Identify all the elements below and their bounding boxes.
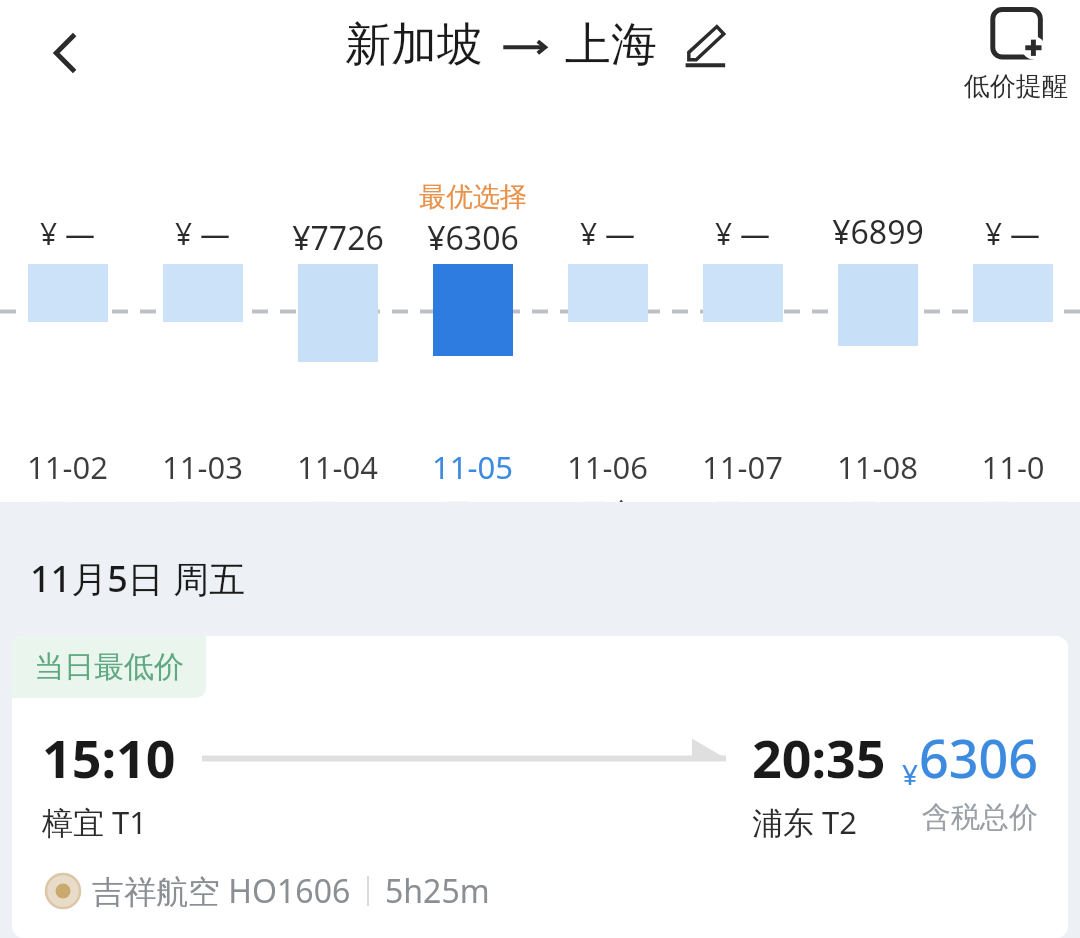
- button[interactable]: 最优选择: [405, 112, 540, 457]
- staticText: 周二: [37, 496, 99, 535]
- button[interactable]: 当日最低价: [12, 636, 1068, 938]
- staticText: ¥ —: [175, 213, 230, 254]
- staticText: 低价提醒: [964, 70, 1068, 103]
- staticText: 上海: [565, 16, 657, 74]
- staticText: 周二: [982, 496, 1044, 535]
- staticText: 周一: [847, 496, 909, 535]
- staticText: ¥ —: [715, 213, 770, 254]
- button[interactable]: ¥ —: [675, 112, 810, 457]
- staticText: 11-07: [702, 446, 783, 488]
- staticText: ¥6306: [427, 216, 519, 260]
- staticText: 11-04: [297, 446, 378, 488]
- button[interactable]: Back: [20, 8, 110, 98]
- button[interactable]: ¥ —: [135, 112, 270, 457]
- button[interactable]: ¥ —: [945, 112, 1080, 457]
- staticText: 11-08: [837, 446, 918, 488]
- staticText: 5h25m: [385, 869, 490, 913]
- staticText: 11月5日 周五: [30, 554, 246, 603]
- staticText: 11-03: [162, 446, 243, 488]
- staticText: ¥: [902, 755, 919, 793]
- staticText: 11-05: [432, 446, 513, 488]
- staticText: ¥ —: [580, 213, 635, 254]
- staticText: ¥7726: [292, 216, 384, 260]
- staticText: 含税总价: [922, 799, 1038, 836]
- staticText: ¥6899: [832, 210, 924, 254]
- staticText: 11-06: [567, 446, 648, 488]
- staticText: 樟宜 T1: [42, 801, 148, 843]
- staticText: 周五: [442, 496, 504, 535]
- staticText: 周四: [307, 496, 369, 535]
- staticText: 浦东 T2: [752, 801, 858, 843]
- staticText: 最优选择: [419, 180, 527, 214]
- staticText: 周日: [712, 496, 774, 535]
- staticText: 11-0: [981, 446, 1045, 488]
- button[interactable]: 低价提醒: [964, 6, 1068, 103]
- staticText: ¥ —: [40, 213, 95, 254]
- staticText: 当日最低价: [34, 648, 184, 686]
- button[interactable]: ¥ —: [540, 112, 675, 457]
- staticText: 吉祥航空 HO1606: [92, 869, 351, 913]
- staticText: 新加坡: [345, 16, 483, 74]
- staticText: 20:35: [752, 722, 886, 793]
- staticText: 6306: [919, 722, 1038, 793]
- button[interactable]: ¥6899: [810, 112, 945, 457]
- staticText: 周六: [577, 496, 639, 535]
- staticText: ¥ —: [985, 213, 1040, 254]
- staticText: 11-02: [27, 446, 108, 488]
- staticText: 15:10: [42, 722, 176, 793]
- staticText: 周三: [172, 496, 234, 535]
- button[interactable]: Edit: [673, 14, 735, 76]
- button[interactable]: ¥7726: [270, 112, 405, 457]
- button[interactable]: ¥ —: [0, 112, 135, 457]
